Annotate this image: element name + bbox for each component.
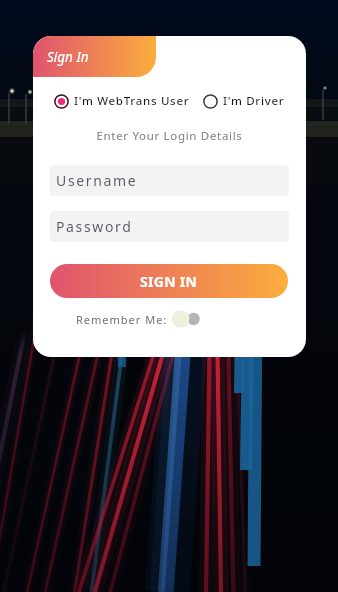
staticText: Remember Me: <box>76 312 168 327</box>
button[interactable]: Username <box>50 165 289 196</box>
button[interactable]: Password <box>50 211 289 242</box>
staticText: Sign In <box>47 48 89 66</box>
button[interactable]: Sign In <box>33 36 156 77</box>
staticText: Password <box>56 217 133 236</box>
button[interactable]: SIGN IN <box>50 264 288 298</box>
staticText: Enter Your Login Details <box>33 128 306 144</box>
staticText: I'm Driver <box>223 93 285 109</box>
staticText: SIGN IN <box>140 272 198 291</box>
staticText: I'm WebTrans User <box>74 93 190 109</box>
staticText: Username <box>56 171 138 190</box>
button[interactable]: I'm WebTrans User <box>54 93 190 109</box>
button[interactable]: I'm Driver <box>203 93 285 109</box>
button[interactable]: Remember Me toggle <box>176 310 204 328</box>
